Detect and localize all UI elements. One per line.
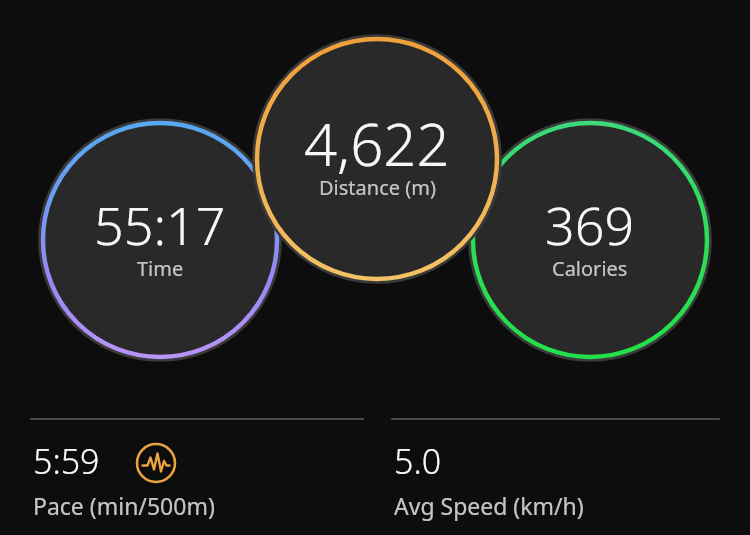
staticText: 5:59 (33, 438, 100, 484)
button[interactable]: Time 55:17 (46, 126, 274, 355)
button[interactable]: Distance 4,622 metres (263, 45, 491, 274)
staticText: Avg Speed (km/h) (394, 490, 584, 521)
staticText: 369 (545, 189, 635, 260)
staticText: 55:17 (94, 189, 226, 260)
button[interactable]: 5:59 (31, 434, 361, 529)
staticText: Pace (min/500m) (33, 490, 215, 521)
button[interactable]: 5.0 (392, 434, 719, 529)
staticText: Distance (m) (319, 174, 436, 201)
button[interactable]: Calories 369 (476, 126, 704, 355)
staticText: 5.0 (394, 438, 442, 484)
staticText: Time (137, 255, 184, 282)
staticText: 4,622 (304, 104, 450, 183)
staticText: Calories (552, 255, 628, 282)
